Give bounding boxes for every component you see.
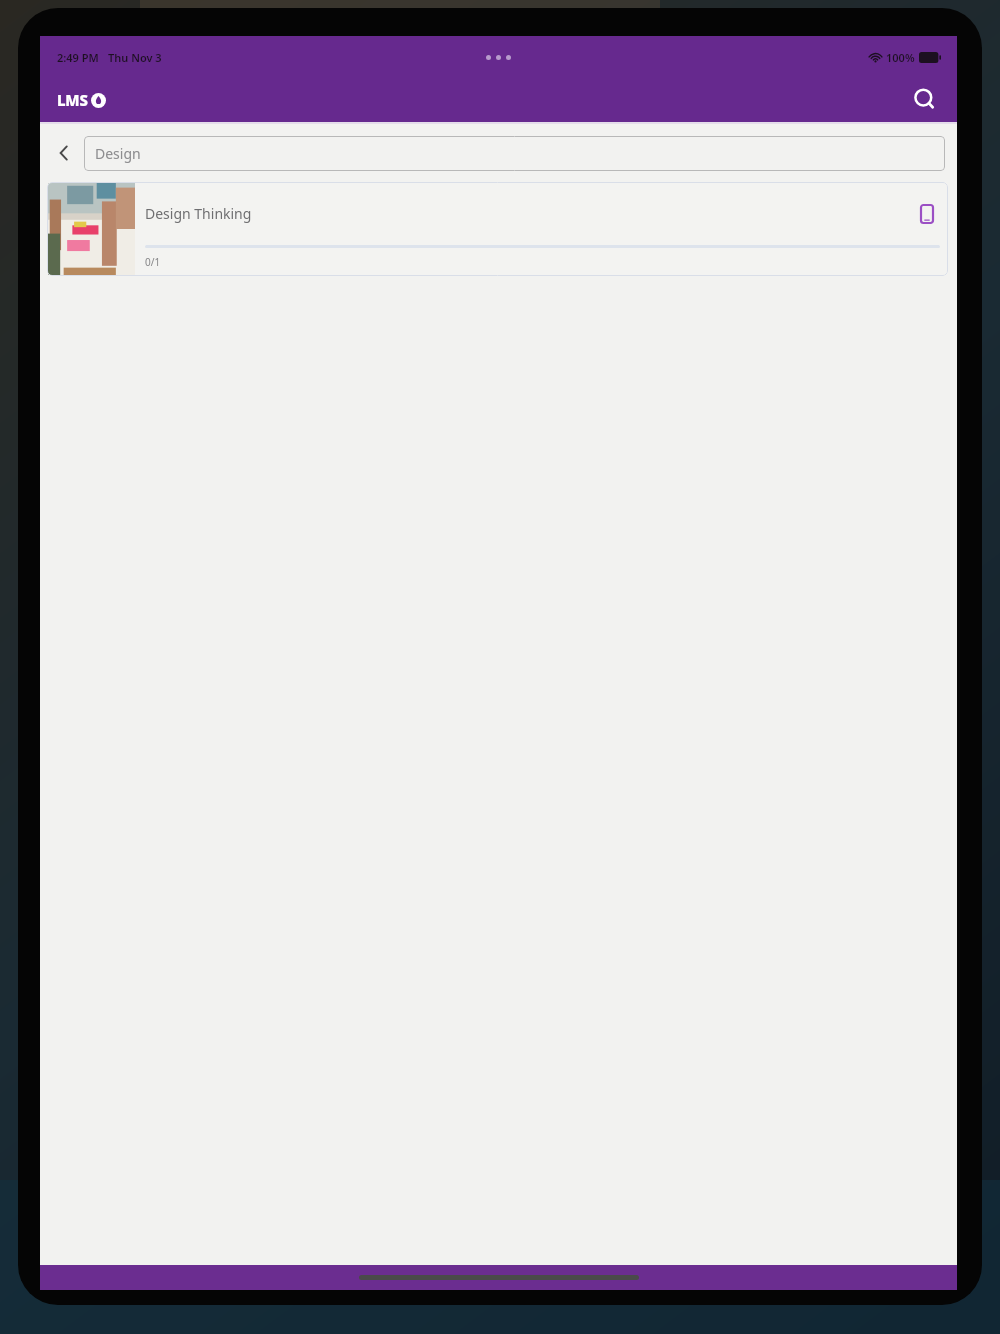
button[interactable]: Mobile available [914,201,940,227]
staticText: Design [95,144,141,163]
button[interactable]: Back [44,133,84,173]
button[interactable]: LMS home [57,90,106,110]
staticText: Thu Nov 3 [108,50,162,65]
staticText: LMS [57,90,88,110]
staticText: Design Thinking [145,204,914,223]
staticText: 0/1 [145,255,161,269]
button[interactable]: Design Thinking [47,182,948,276]
staticText: 100% [886,50,915,65]
button[interactable]: Search [905,80,945,120]
staticText: 2:49 PM [57,50,99,65]
button[interactable]: Design [84,136,945,171]
